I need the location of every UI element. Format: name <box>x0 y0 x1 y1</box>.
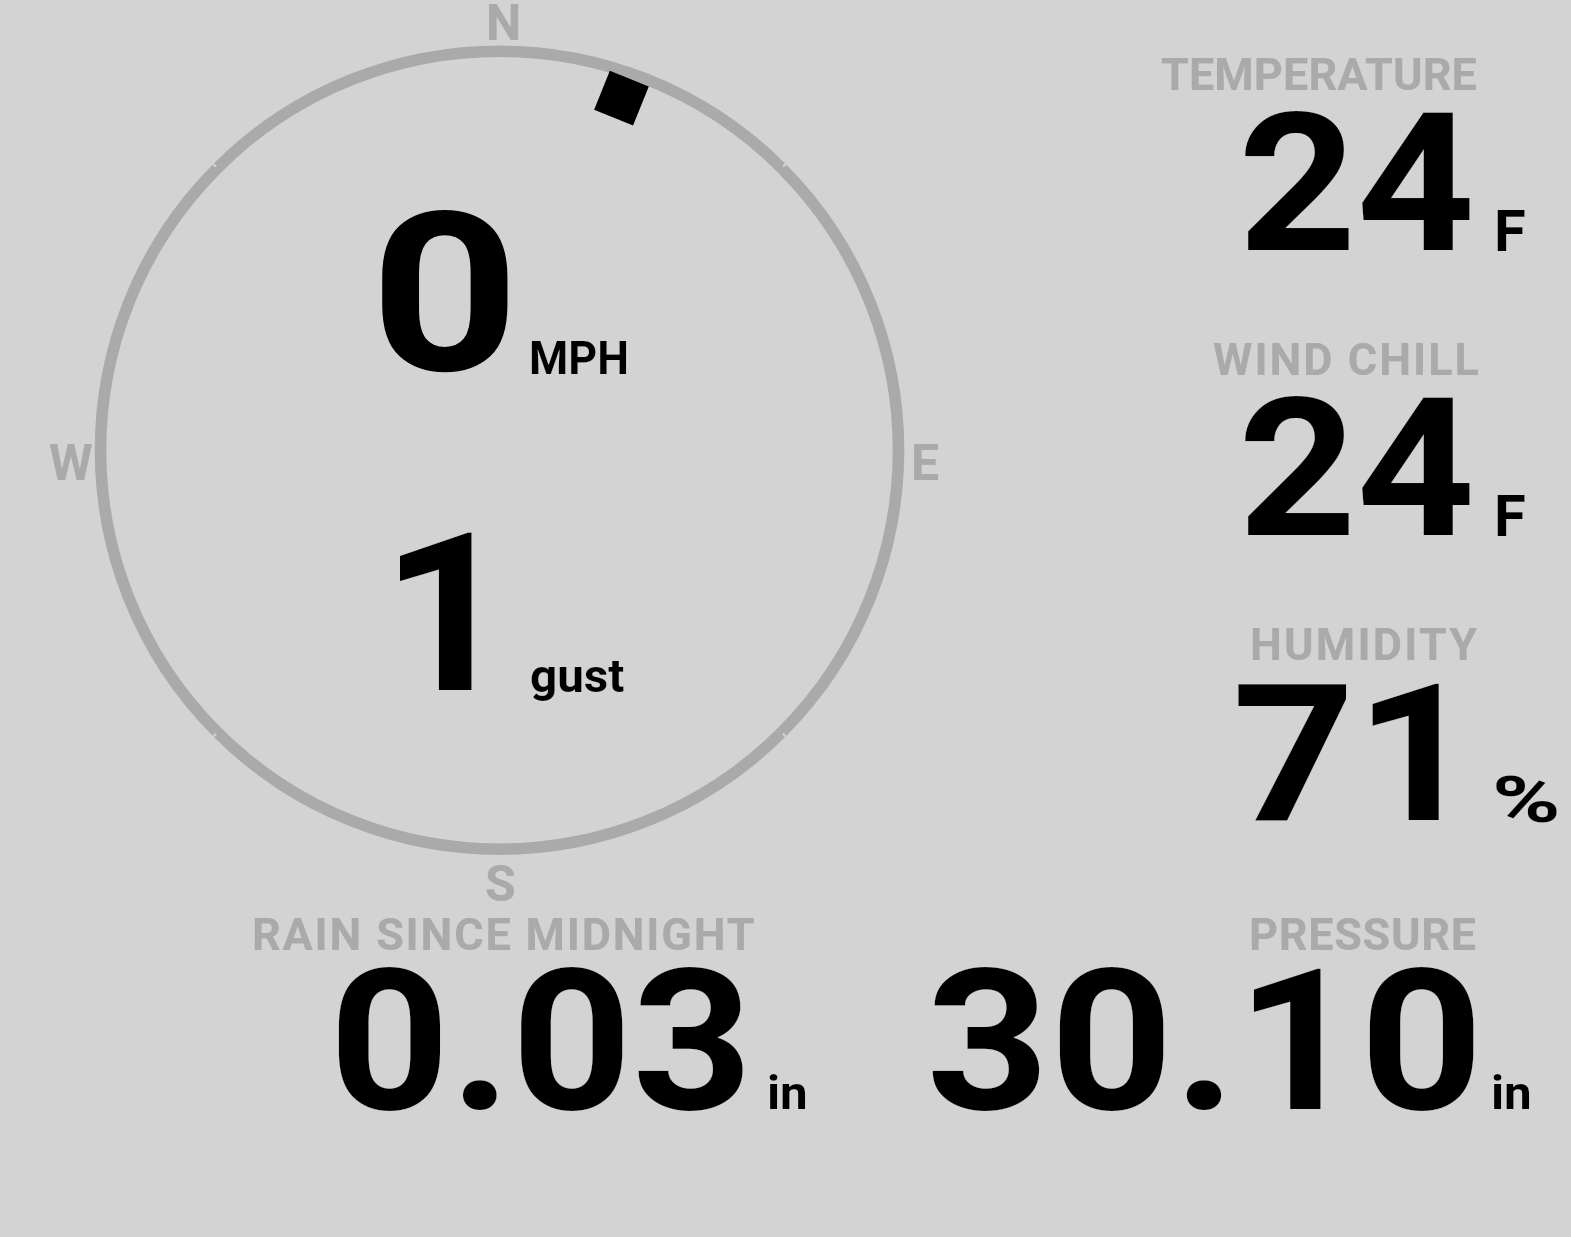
staticText: MPH <box>529 331 629 385</box>
staticText: HUMIDITY <box>1250 618 1480 671</box>
staticText: WIND CHILL <box>1213 333 1481 386</box>
staticText: N <box>486 0 522 53</box>
staticText: W <box>49 434 93 493</box>
staticText: TEMPERATURE <box>1161 48 1477 101</box>
staticText: RAIN SINCE MIDNIGHT <box>252 908 757 961</box>
staticText: 0.03 <box>329 927 754 1157</box>
button[interactable]: Rain since midnight 0.03 inches <box>240 900 780 1120</box>
staticText: 71 <box>1232 643 1478 867</box>
staticText: 0 <box>370 164 520 424</box>
staticText: 30.10 <box>926 927 1484 1157</box>
staticText: S <box>485 855 516 914</box>
staticText: in <box>1491 1065 1532 1120</box>
staticText: E <box>911 434 940 493</box>
staticText: F <box>1494 482 1526 550</box>
staticText: % <box>1492 763 1562 838</box>
staticText: 1 <box>381 485 514 744</box>
staticText: 24 <box>1238 356 1475 583</box>
button[interactable]: Temperature 24 degrees Fahrenheit <box>1100 40 1540 265</box>
staticText: gust <box>530 649 625 703</box>
button[interactable]: Wind chill 24 degrees Fahrenheit <box>1100 325 1540 550</box>
staticText: PRESSURE <box>1249 908 1477 961</box>
staticText: 24 <box>1238 71 1475 298</box>
button[interactable]: Pressure 30.10 inches <box>900 900 1540 1120</box>
staticText: in <box>767 1065 808 1120</box>
button[interactable]: Humidity 71 percent <box>1100 610 1540 835</box>
staticText: F <box>1494 197 1526 265</box>
button[interactable]: Wind 0 miles per hour, gusting 1 <box>96 47 904 855</box>
